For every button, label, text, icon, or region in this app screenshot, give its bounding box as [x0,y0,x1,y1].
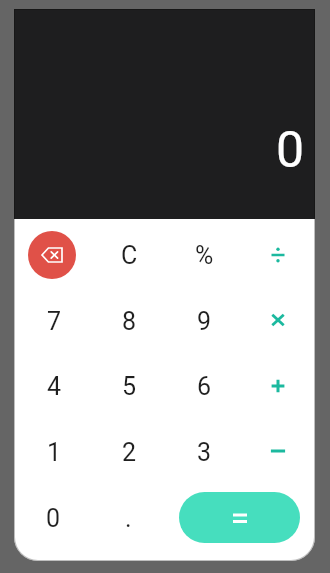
button[interactable]: 1 [14,418,90,484]
staticText: 0 [46,504,61,533]
button[interactable] [28,231,76,279]
staticText: 6 [197,372,212,401]
staticText: C [121,241,138,270]
button[interactable]: 4 [14,353,90,418]
staticText: 8 [122,307,137,336]
button[interactable]: 3 [165,418,240,484]
button[interactable]: 2 [90,418,165,484]
staticText: . [125,504,132,533]
staticText: % [195,241,214,270]
button[interactable]: C [90,222,165,287]
button[interactable] [179,492,300,543]
button[interactable] [240,418,315,484]
button[interactable]: 9 [165,287,240,353]
staticText: 3 [197,438,212,467]
button[interactable]: 0 [14,484,89,550]
button[interactable]: 7 [14,287,90,353]
staticText: 0 [276,121,305,180]
button[interactable] [240,222,315,287]
button[interactable] [240,353,315,418]
staticText: 7 [47,307,62,336]
staticText: 4 [47,372,62,401]
button[interactable]: 5 [90,353,165,418]
button[interactable]: % [165,222,240,287]
button[interactable]: 6 [165,353,240,418]
button[interactable]: . [89,484,164,550]
button[interactable]: 8 [90,287,165,353]
staticText: 5 [122,372,137,401]
staticText: 1 [47,438,62,467]
staticText: 2 [122,438,137,467]
staticText: 9 [197,307,212,336]
button[interactable] [240,287,315,353]
